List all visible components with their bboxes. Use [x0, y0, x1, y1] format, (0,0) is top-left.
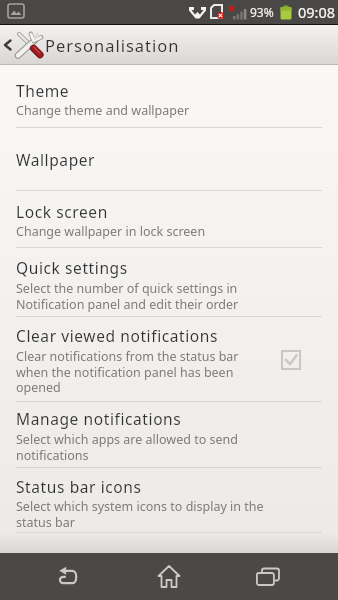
- button[interactable]: [225, 553, 338, 600]
- button[interactable]: Status bar icons: [0, 468, 338, 533]
- staticText: Wallpaper: [16, 149, 96, 170]
- button[interactable]: Clear viewed notifications: [0, 317, 338, 402]
- button[interactable]: Quick settings: [0, 248, 338, 317]
- staticText: Change theme and wallpaper: [16, 102, 322, 119]
- button[interactable]: Wallpaper: [0, 128, 338, 191]
- staticText: Select which system icons to display in …: [16, 498, 288, 530]
- button[interactable]: [0, 553, 113, 600]
- button[interactable]: Theme: [0, 66, 338, 128]
- staticText: Lock screen: [16, 201, 108, 222]
- staticText: 09:08: [298, 2, 336, 22]
- button[interactable]: Lock screen: [0, 191, 338, 248]
- staticText: Select the number of quick settings in N…: [16, 280, 268, 312]
- button[interactable]: Manage notifications: [0, 402, 338, 468]
- staticText: Status bar icons: [16, 476, 142, 497]
- staticText: Theme: [16, 80, 70, 101]
- staticText: Clear notifications from the status bar …: [16, 348, 268, 395]
- staticText: Manage notifications: [16, 408, 182, 429]
- staticText: Select which apps are allowed to send no…: [16, 431, 278, 463]
- staticText: Personalisation: [45, 34, 180, 56]
- staticText: Change wallpaper in lock screen: [16, 223, 322, 240]
- button[interactable]: Personalisation: [0, 25, 180, 65]
- button[interactable]: [113, 553, 225, 600]
- staticText: Clear viewed notifications: [16, 325, 219, 346]
- staticText: Quick settings: [16, 257, 128, 278]
- staticText: 93%: [250, 4, 274, 20]
